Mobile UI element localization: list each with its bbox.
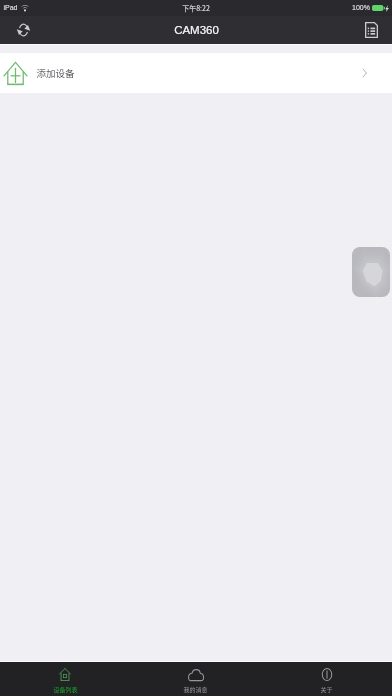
button[interactable]: Event log: [350, 16, 392, 44]
button[interactable]: Refresh: [0, 16, 45, 44]
staticText: 我的消息: [183, 685, 208, 694]
button[interactable]: 关于: [261, 662, 392, 696]
staticText: 下午8:22: [182, 3, 210, 13]
button[interactable]: Assistive touch: [352, 247, 390, 297]
staticText: 关于: [320, 685, 333, 694]
staticText: 100%: [352, 4, 370, 12]
button[interactable]: 设备列表: [0, 662, 130, 696]
staticText: 设备列表: [53, 685, 78, 694]
button[interactable]: 我的消息: [130, 662, 261, 696]
staticText: iPad: [3, 4, 18, 12]
staticText: CAM360: [174, 24, 219, 37]
button[interactable]: 添加设备: [0, 53, 392, 93]
staticText: 添加设备: [36, 66, 75, 80]
